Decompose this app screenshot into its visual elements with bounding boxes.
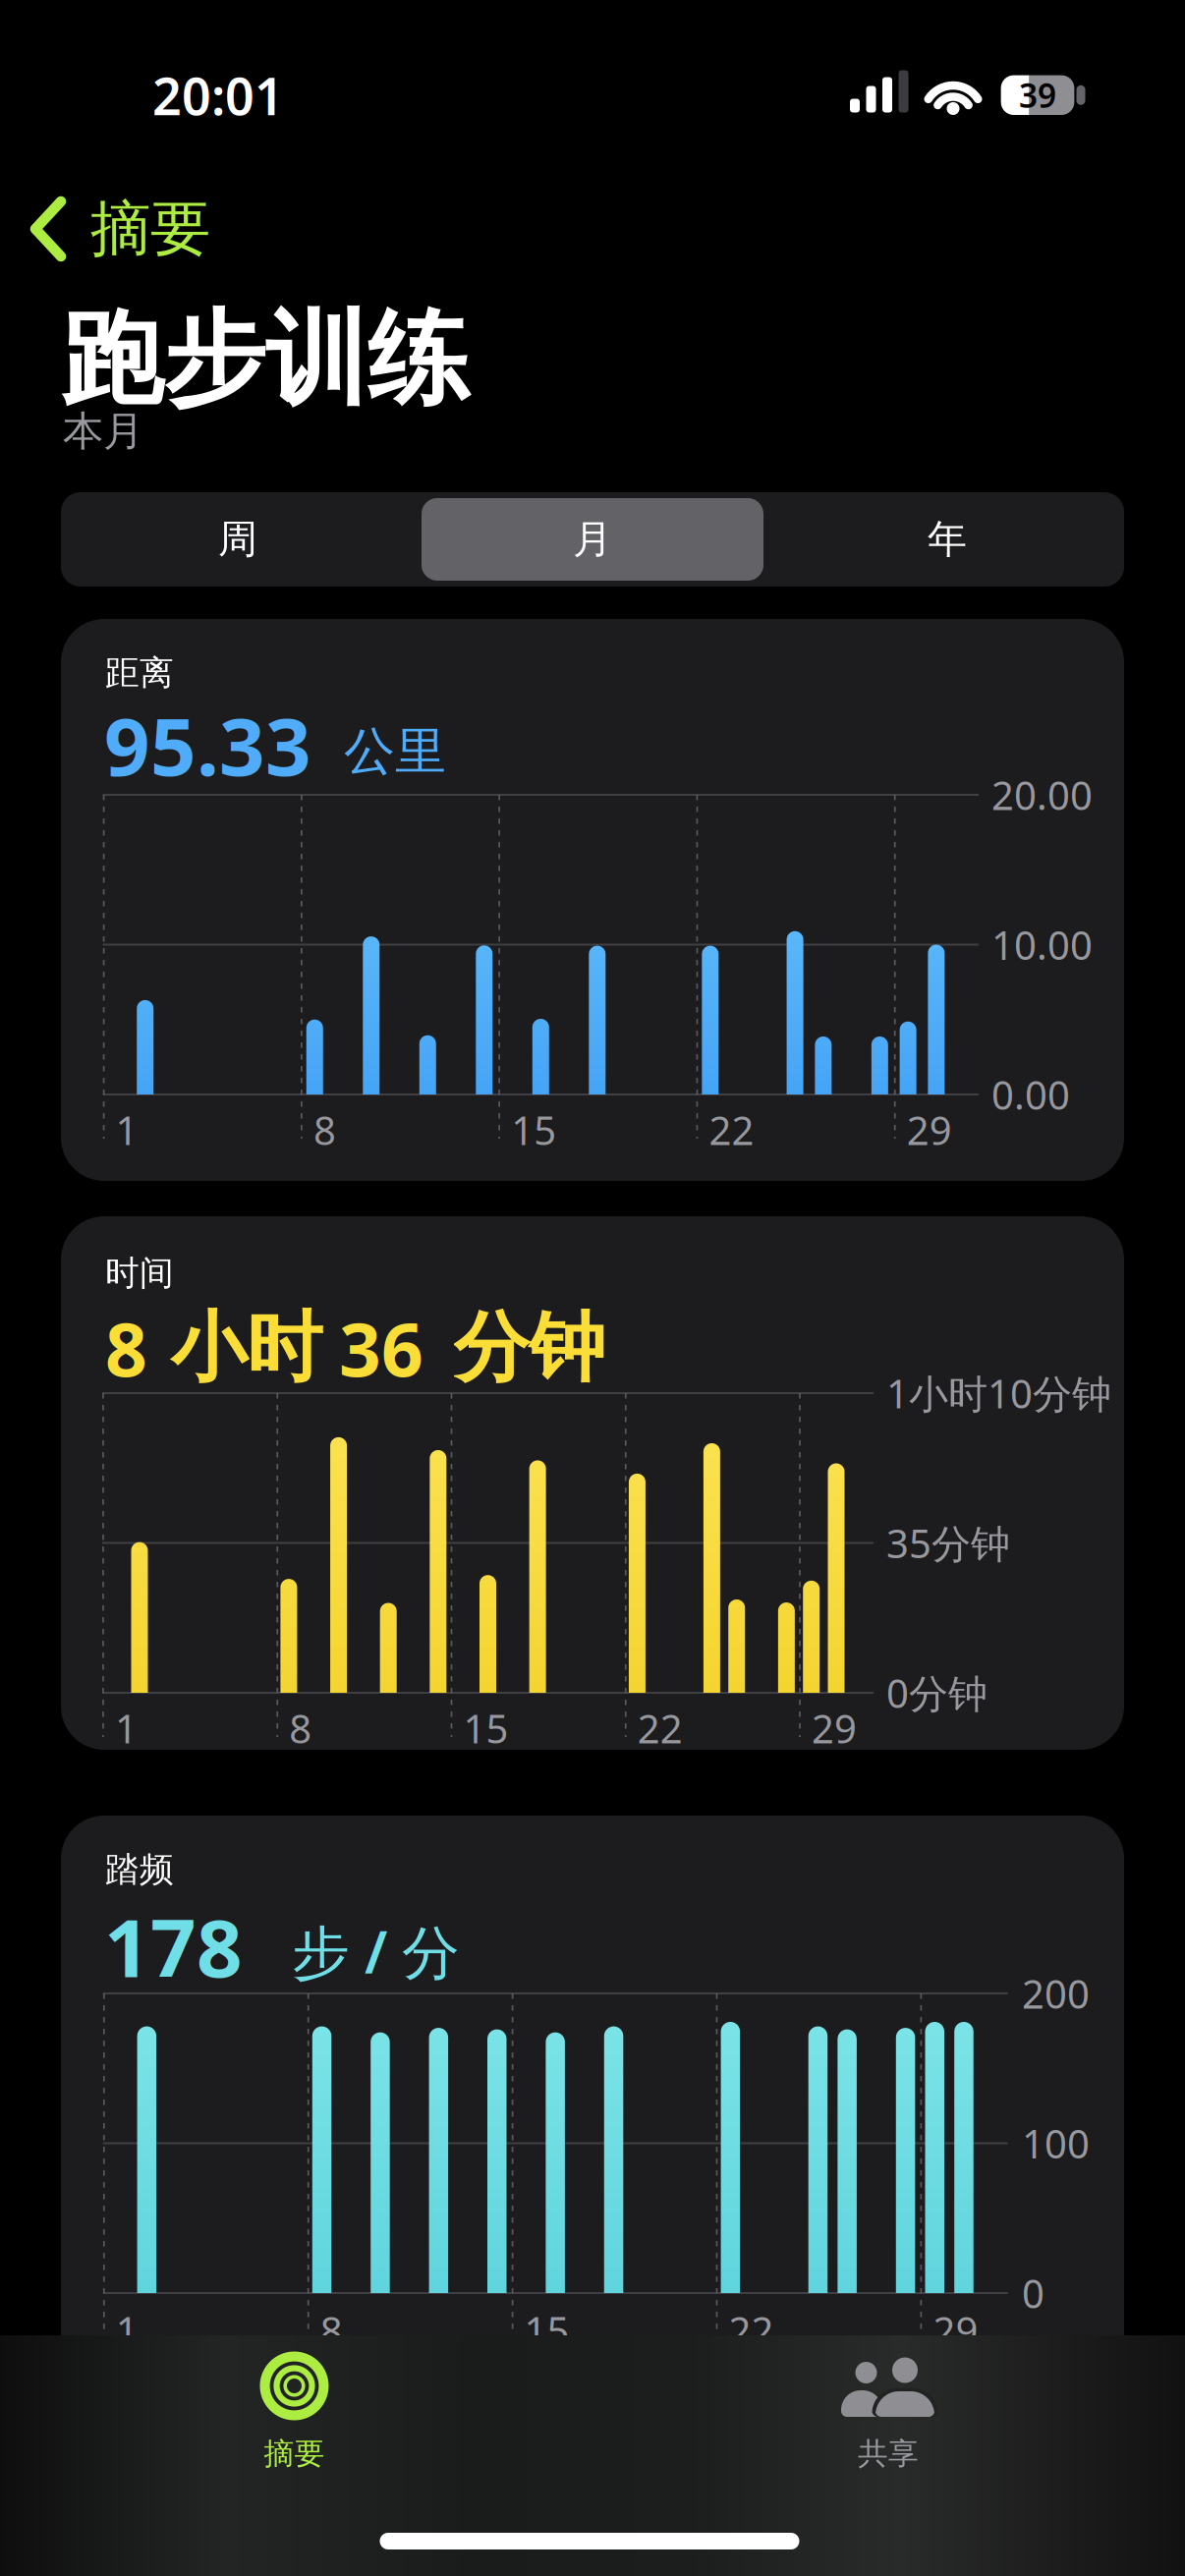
staticText: 22	[638, 1702, 683, 1754]
staticText: 周	[218, 515, 257, 563]
staticText: 1小时10分钟	[886, 1367, 1111, 1419]
staticText: 小时	[171, 1301, 322, 1395]
staticText: 距离	[105, 652, 174, 694]
button[interactable]: 年	[772, 492, 1122, 587]
staticText: 时间	[105, 1252, 174, 1294]
staticText: 35分钟	[886, 1517, 1010, 1569]
staticText: 共享	[858, 2435, 919, 2472]
staticText: 10.00	[991, 918, 1093, 971]
staticText: 29	[907, 1104, 952, 1156]
staticText: 178	[104, 1893, 243, 1999]
staticText: 年	[928, 515, 967, 563]
staticText: 8	[320, 2304, 343, 2356]
staticText: 摘要	[90, 192, 210, 266]
button[interactable]: 月	[418, 492, 767, 587]
staticText: 15	[463, 1702, 508, 1754]
staticText: 0.00	[991, 1068, 1070, 1120]
staticText: 20:01	[152, 61, 284, 129]
staticText: 200	[1022, 1967, 1090, 2019]
staticText: 月	[573, 515, 612, 563]
staticText: 95.33	[104, 692, 311, 798]
button[interactable]: 共享	[711, 2324, 1065, 2510]
staticText: 29	[933, 2304, 978, 2356]
staticText: 8	[105, 1299, 147, 1397]
staticText: 1	[116, 1104, 138, 1156]
staticText: 1	[115, 1702, 138, 1754]
button[interactable]: 周	[63, 492, 413, 587]
staticText: 8	[289, 1702, 312, 1754]
staticText: 29	[812, 1702, 857, 1754]
staticText: 跑步训练	[61, 297, 470, 422]
staticText: 0分钟	[886, 1667, 987, 1719]
staticText: 公里	[344, 720, 446, 783]
staticText: 39	[1019, 73, 1056, 117]
staticText: 22	[729, 2304, 774, 2356]
staticText: 踏频	[105, 1849, 174, 1891]
button[interactable]: 摘要	[24, 190, 230, 268]
staticText: 36	[339, 1299, 423, 1397]
button[interactable]: 摘要	[117, 2324, 471, 2510]
staticText: 8	[313, 1104, 336, 1156]
staticText: 0	[1022, 2267, 1044, 2319]
staticText: 100	[1022, 2117, 1090, 2169]
staticText: 1	[116, 2304, 138, 2356]
staticText: 20.00	[991, 769, 1093, 821]
staticText: 分钟	[453, 1301, 605, 1395]
staticText: 15	[524, 2304, 570, 2356]
staticText: 15	[511, 1104, 556, 1156]
staticText: 本月	[63, 406, 143, 456]
staticText: 22	[709, 1104, 754, 1156]
staticText: 摘要	[264, 2435, 325, 2472]
staticText: 步 / 分	[292, 1913, 460, 1989]
